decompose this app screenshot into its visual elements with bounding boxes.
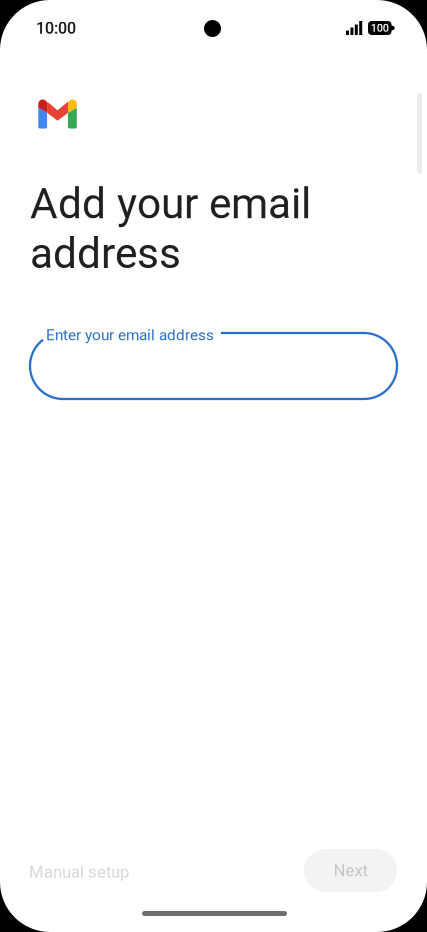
staticText: Next bbox=[333, 861, 367, 880]
staticText: Enter your email address bbox=[46, 326, 214, 344]
staticText: Add your email address bbox=[30, 179, 311, 278]
staticText: 100 bbox=[371, 22, 389, 34]
staticText: Manual setup bbox=[29, 862, 129, 882]
staticText: 10:00 bbox=[36, 19, 76, 38]
button[interactable]: Next bbox=[304, 849, 397, 892]
button[interactable]: Manual setup bbox=[29, 851, 159, 893]
